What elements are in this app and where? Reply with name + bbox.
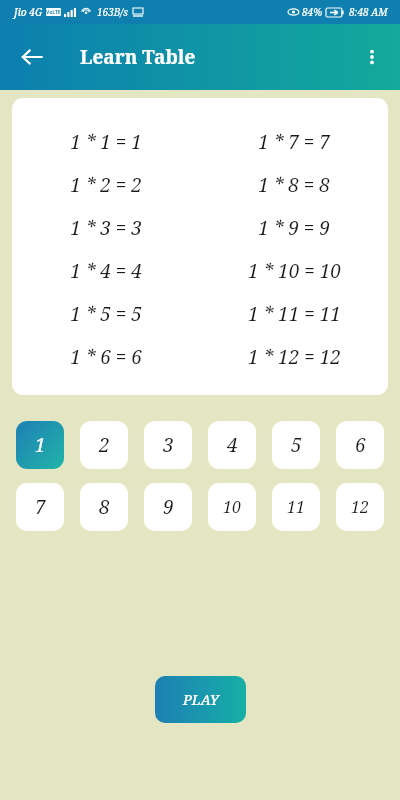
- staticText: 1 * 6 = 6: [70, 344, 142, 370]
- staticText: 163B/s: [97, 5, 128, 19]
- staticText: 6: [355, 432, 366, 458]
- staticText: 1 * 9 = 9: [258, 215, 330, 241]
- staticText: 4: [227, 432, 238, 458]
- button[interactable]: Back: [10, 35, 54, 79]
- staticText: 3: [163, 432, 174, 458]
- button[interactable]: 6: [336, 421, 384, 469]
- button[interactable]: More options: [350, 35, 394, 79]
- staticText: 1 * 8 = 8: [258, 172, 330, 198]
- staticText: 1 * 3 = 3: [70, 215, 142, 241]
- button[interactable]: 3: [144, 421, 192, 469]
- button[interactable]: 12: [336, 483, 384, 531]
- staticText: 84%: [302, 5, 323, 19]
- button[interactable]: 1: [16, 421, 64, 469]
- staticText: 1: [35, 432, 46, 458]
- button[interactable]: 11: [272, 483, 320, 531]
- staticText: 1 * 11 = 11: [248, 301, 341, 327]
- staticText: 12: [351, 496, 369, 518]
- staticText: 9: [163, 494, 174, 520]
- staticText: 5: [291, 432, 302, 458]
- staticText: 1 * 2 = 2: [70, 172, 142, 198]
- staticText: VoLTE: [46, 9, 61, 16]
- button[interactable]: 7: [16, 483, 64, 531]
- staticText: Learn Table: [80, 44, 196, 70]
- staticText: 1 * 7 = 7: [258, 129, 330, 155]
- staticText: 11: [287, 496, 305, 518]
- staticText: 2: [99, 432, 110, 458]
- staticText: PLAY: [183, 690, 219, 709]
- button[interactable]: 9: [144, 483, 192, 531]
- button[interactable]: PLAY: [155, 676, 246, 723]
- staticText: 10: [223, 496, 241, 518]
- staticText: 1 * 10 = 10: [248, 258, 341, 284]
- button[interactable]: 5: [272, 421, 320, 469]
- staticText: 8: [99, 494, 110, 520]
- staticText: 7: [35, 494, 46, 520]
- button[interactable]: 10: [208, 483, 256, 531]
- staticText: 1 * 5 = 5: [70, 301, 142, 327]
- button[interactable]: 8: [80, 483, 128, 531]
- staticText: 1 * 12 = 12: [248, 344, 341, 370]
- staticText: 1 * 4 = 4: [70, 258, 142, 284]
- staticText: 8:48 AM: [349, 5, 388, 19]
- staticText: 1 * 1 = 1: [70, 129, 142, 155]
- button[interactable]: 2: [80, 421, 128, 469]
- staticText: Jio 4G: [14, 5, 43, 19]
- button[interactable]: 4: [208, 421, 256, 469]
